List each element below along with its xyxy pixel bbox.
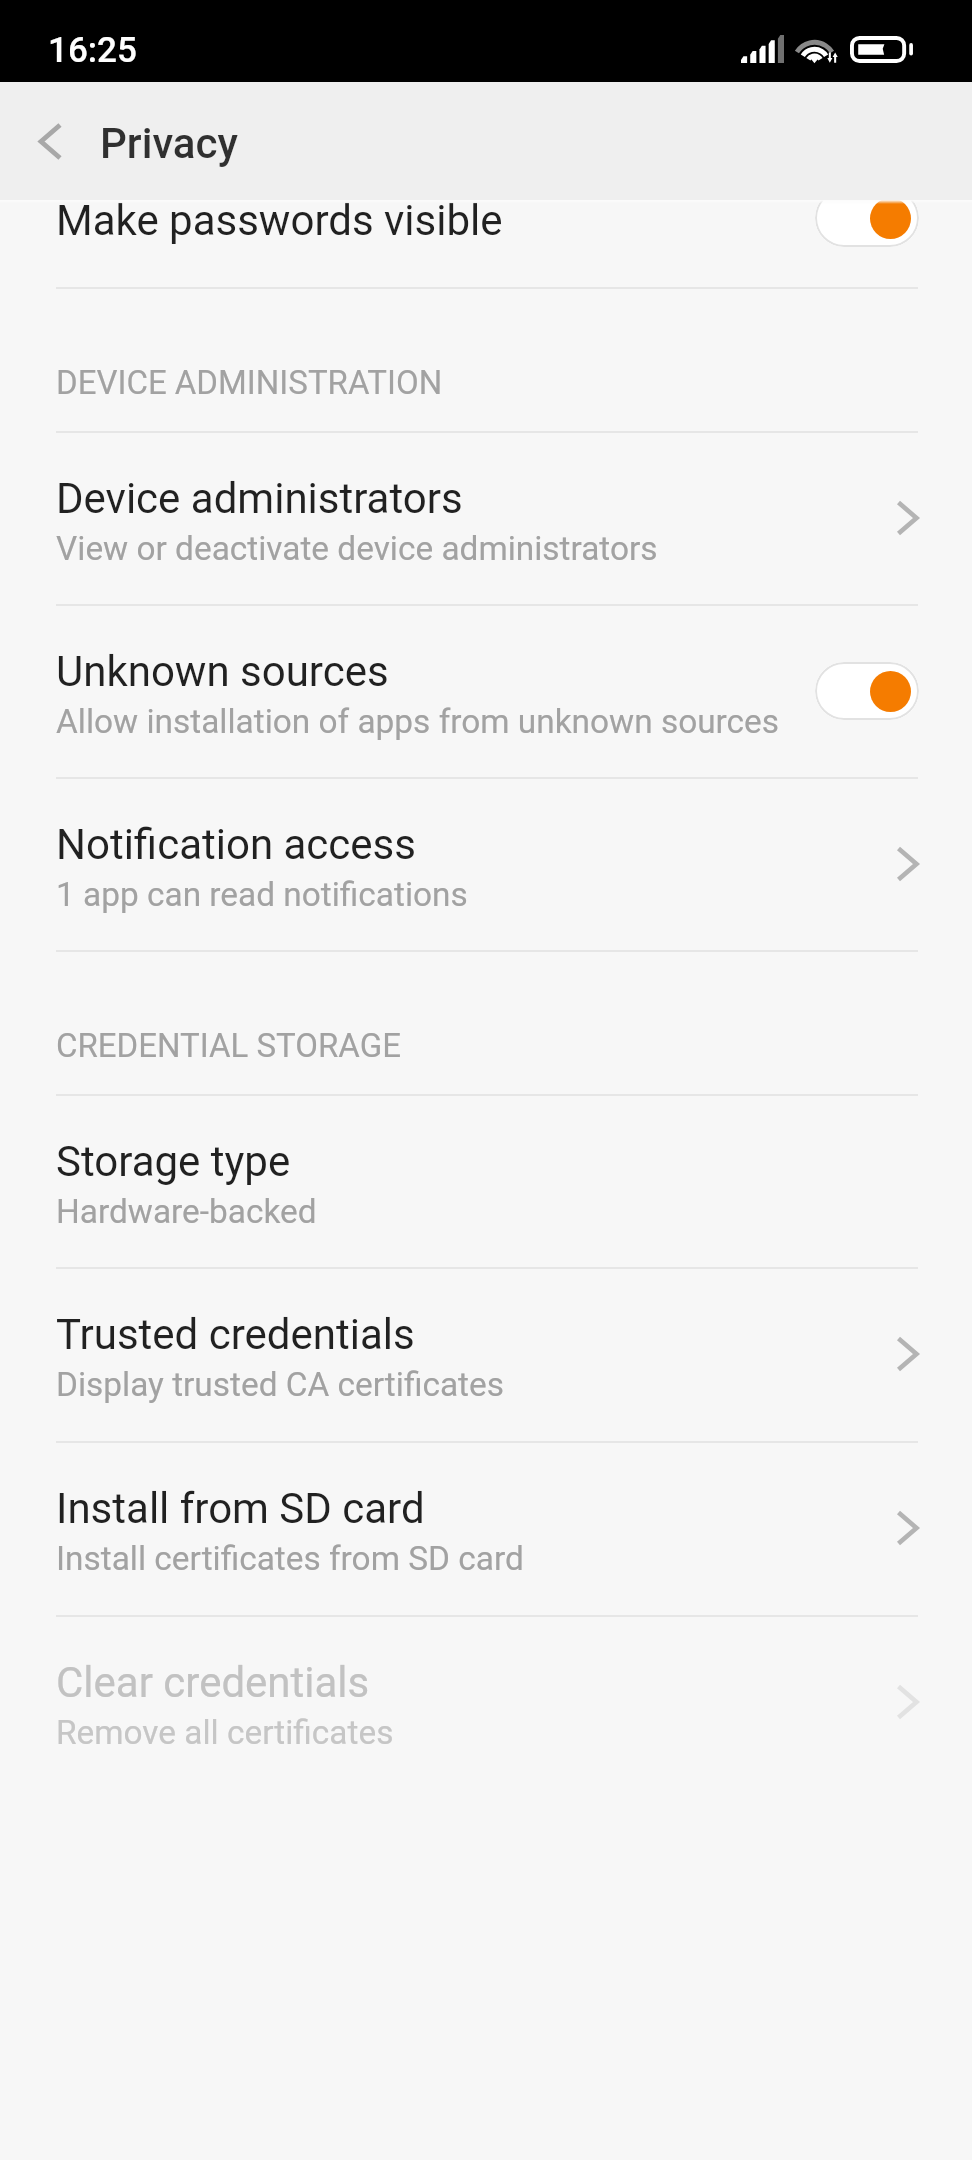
button[interactable]: Make passwords visible bbox=[0, 200, 972, 287]
staticText: Clear credentials bbox=[56, 1658, 370, 1707]
staticText: Privacy bbox=[100, 119, 239, 168]
staticText: DEVICE ADMINISTRATION bbox=[56, 363, 443, 402]
staticText: 1 app can read notifications bbox=[56, 875, 468, 914]
button[interactable]: Storage type bbox=[0, 1096, 972, 1267]
staticText: View or deactivate device administrators bbox=[56, 529, 658, 568]
button[interactable]: Install from SD card bbox=[0, 1443, 972, 1615]
staticText: Display trusted CA certificates bbox=[56, 1365, 504, 1404]
staticText: Install from SD card bbox=[56, 1484, 425, 1533]
staticText: Device administrators bbox=[56, 474, 463, 523]
staticText: Make passwords visible bbox=[56, 200, 503, 245]
staticText: Trusted credentials bbox=[56, 1310, 415, 1359]
staticText: CREDENTIAL STORAGE bbox=[56, 1026, 401, 1065]
staticText: Storage type bbox=[56, 1137, 291, 1186]
button[interactable]: Toggle bbox=[815, 662, 919, 720]
button[interactable]: Notification access bbox=[0, 779, 972, 950]
staticText: Allow installation of apps from unknown … bbox=[56, 702, 780, 741]
button[interactable]: Trusted credentials bbox=[0, 1269, 972, 1441]
staticText: Notification access bbox=[56, 820, 416, 869]
staticText: Remove all certificates bbox=[56, 1713, 394, 1752]
button[interactable]: Toggle bbox=[815, 200, 919, 247]
staticText: Install certificates from SD card bbox=[56, 1539, 524, 1578]
button[interactable]: Unknown sources bbox=[0, 606, 972, 777]
staticText: Unknown sources bbox=[56, 647, 389, 696]
button[interactable]: Clear credentials bbox=[0, 1617, 972, 1788]
button[interactable]: Back bbox=[0, 82, 100, 200]
button[interactable]: Device administrators bbox=[0, 433, 972, 604]
staticText: 16:25 bbox=[48, 30, 137, 71]
staticText: Hardware-backed bbox=[56, 1192, 317, 1231]
